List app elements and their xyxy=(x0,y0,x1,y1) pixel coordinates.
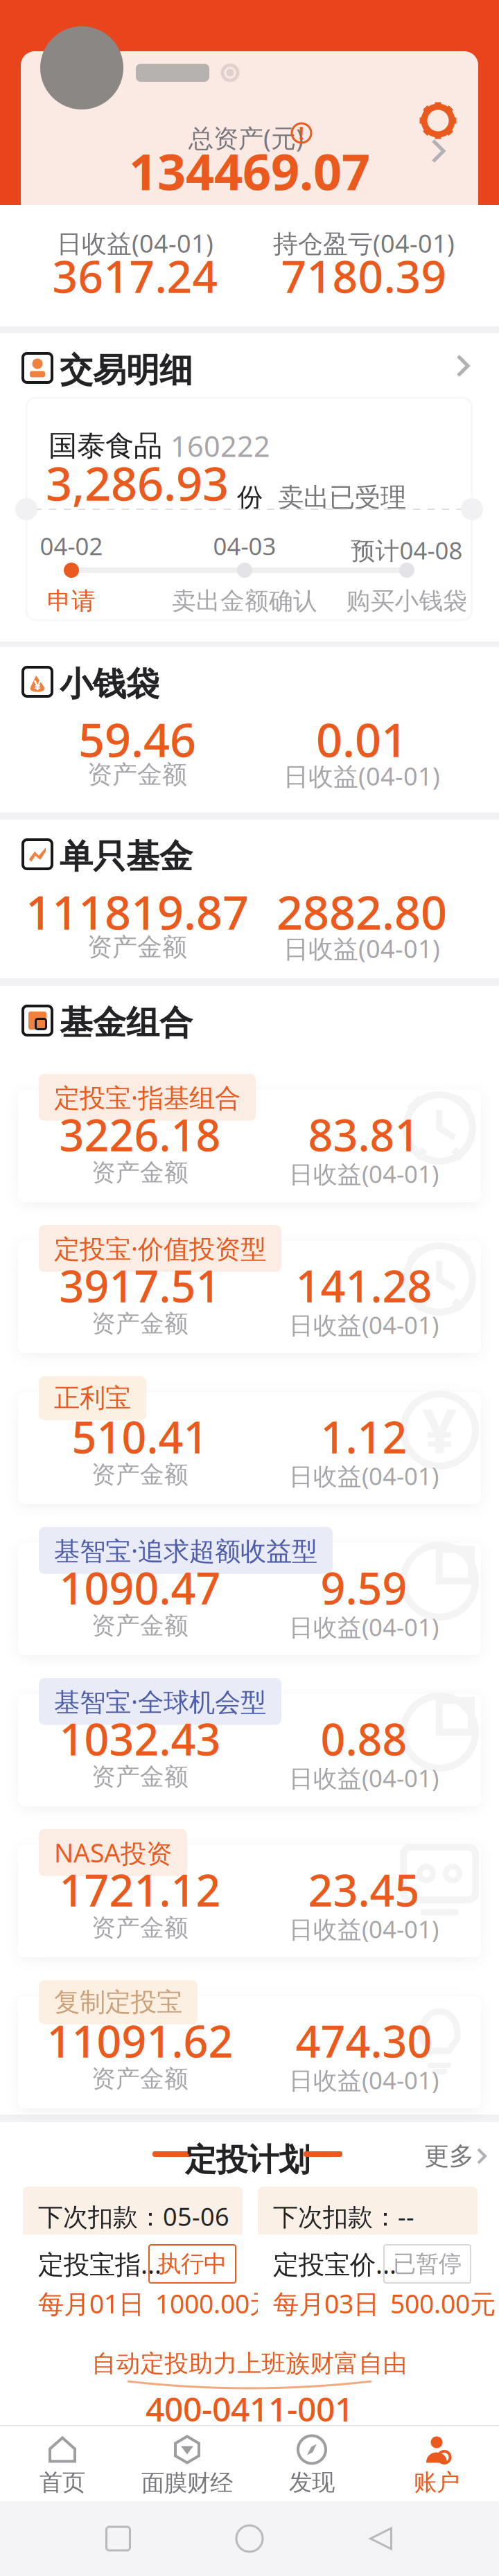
staticText: 日收益(04-01) xyxy=(289,1611,439,1643)
staticText: 份 xyxy=(237,482,263,513)
button[interactable]: 面膜财经 xyxy=(125,2425,249,2501)
staticText: 日收益(04-01) xyxy=(289,2064,439,2096)
button[interactable]: 更多 xyxy=(424,2122,495,2171)
button[interactable]: 国泰食品 xyxy=(26,398,472,620)
staticText: 交易明细 xyxy=(60,350,193,391)
staticText: 111819.87 xyxy=(26,881,249,942)
staticText: 1032.43 xyxy=(59,1710,221,1767)
staticText: 资产金额 xyxy=(91,1460,189,1489)
staticText: 购买小钱袋 xyxy=(346,586,467,616)
staticText: 日收益(04-01) xyxy=(283,759,440,792)
staticText: 执行中 xyxy=(158,2250,227,2278)
button[interactable]: 下次扣款：05-06 xyxy=(23,2187,243,2322)
staticText: 资产金额 xyxy=(91,1158,189,1187)
staticText: 1.12 xyxy=(321,1408,407,1465)
staticText: 下次扣款：-- xyxy=(273,2200,414,2233)
staticText: ! xyxy=(299,121,304,145)
staticText: 134469.07 xyxy=(129,138,370,204)
staticText: 0.88 xyxy=(321,1710,407,1767)
staticText: 474.30 xyxy=(296,2012,432,2070)
button[interactable]: 单只基金 xyxy=(0,820,499,879)
staticText: 定投宝·指基组合 xyxy=(54,1080,240,1115)
staticText: 单只基金 xyxy=(60,836,193,877)
staticText: 资产金额 xyxy=(87,932,187,962)
button[interactable]: 账户 xyxy=(374,2425,499,2501)
staticText: 卖出已受理 xyxy=(278,482,406,513)
staticText: 1090.47 xyxy=(59,1559,221,1616)
staticText: 7180.39 xyxy=(281,246,447,305)
staticText: 59.46 xyxy=(78,708,196,770)
staticText: 复制定投宝 xyxy=(54,1986,182,2018)
button[interactable]: 基智宝·全球机会型 xyxy=(0,1678,499,1829)
button[interactable]: 发现 xyxy=(249,2425,374,2501)
staticText: 2882.80 xyxy=(277,881,447,942)
staticText: 基智宝·追求超额收益型 xyxy=(54,1533,317,1568)
staticText: 日收益(04-01) xyxy=(289,1762,439,1794)
staticText: 日收益(04-01) xyxy=(289,1158,439,1190)
staticText: 定投宝·价值投资型 xyxy=(54,1231,266,1266)
staticText: 更多 xyxy=(424,2141,474,2171)
staticText: 160222 xyxy=(170,427,270,465)
staticText: 3617.24 xyxy=(52,246,218,305)
staticText: 基金组合 xyxy=(60,1003,193,1044)
staticText: 总资产(元) xyxy=(189,121,304,154)
button[interactable]: 首页 xyxy=(0,2425,125,2501)
staticText: 资产金额 xyxy=(91,1762,189,1791)
staticText: 国泰食品 xyxy=(49,428,162,464)
staticText: 23.45 xyxy=(308,1861,420,1918)
staticText: 日收益(04-01) xyxy=(283,932,440,965)
staticText: 预计04-08 xyxy=(351,534,463,566)
staticText: 面膜财经 xyxy=(141,2469,233,2497)
staticText: 400-0411-001 xyxy=(146,2387,353,2431)
staticText: 定投宝价... xyxy=(273,2247,396,2281)
staticText: 日收益(04-01) xyxy=(57,226,213,260)
staticText: 9.59 xyxy=(321,1559,407,1616)
button[interactable]: 定投宝·指基组合 xyxy=(0,1074,499,1225)
staticText: 申请 xyxy=(47,586,96,616)
staticText: 已暂停 xyxy=(393,2250,462,2278)
button[interactable]: ¥ xyxy=(0,647,499,707)
staticText: 11091.62 xyxy=(47,2012,233,2070)
staticText: 资产金额 xyxy=(87,759,187,790)
staticText: 资产金额 xyxy=(91,1913,189,1943)
button[interactable]: 交易明细 xyxy=(0,333,499,393)
staticText: 基智宝·全球机会型 xyxy=(54,1684,266,1719)
staticText: 资产金额 xyxy=(91,1309,189,1338)
staticText: 1721.12 xyxy=(59,1861,221,1918)
staticText: 每月03日 xyxy=(273,2286,379,2321)
staticText: 83.81 xyxy=(308,1106,420,1163)
staticText: 每月01日 xyxy=(38,2286,144,2321)
staticText: 04-02 xyxy=(40,530,103,562)
button[interactable]: ¥ xyxy=(0,1376,499,1527)
staticText: 定投计划 xyxy=(185,2141,310,2179)
button[interactable]: 基智宝·追求超额收益型 xyxy=(0,1527,499,1678)
staticText: 定投宝指... xyxy=(38,2247,161,2281)
staticText: ¥ xyxy=(34,676,41,694)
staticText: 日收益(04-01) xyxy=(289,1309,439,1341)
staticText: 3917.51 xyxy=(59,1257,221,1314)
staticText: 发现 xyxy=(289,2468,335,2497)
staticText: ¥ xyxy=(422,1390,457,1471)
staticText: NASA投资 xyxy=(54,1835,172,1870)
button[interactable]: NASA投资 xyxy=(0,1829,499,1980)
button[interactable]: 下次扣款：-- xyxy=(258,2187,478,2322)
staticText: 下次扣款：05-06 xyxy=(38,2200,229,2233)
staticText: 自动定投助力上班族财富自由 xyxy=(92,2349,407,2378)
button[interactable]: Settings xyxy=(419,101,457,140)
staticText: 账户 xyxy=(414,2468,459,2497)
staticText: 1000.00元 xyxy=(155,2286,275,2321)
staticText: 3,286.93 xyxy=(46,452,229,513)
button[interactable]: 定投宝·价值投资型 xyxy=(0,1225,499,1376)
staticText: 141.28 xyxy=(296,1257,432,1314)
staticText: 小钱袋 xyxy=(60,664,159,705)
button[interactable]: 复制定投宝 xyxy=(0,1980,499,2131)
staticText: 3226.18 xyxy=(59,1106,221,1163)
staticText: 日收益(04-01) xyxy=(289,1460,439,1492)
staticText: 资产金额 xyxy=(91,2064,189,2094)
button[interactable]: 基金组合 xyxy=(0,986,499,1046)
staticText: 510.41 xyxy=(72,1408,208,1465)
staticText: 持仓盈亏(04-01) xyxy=(273,226,455,260)
staticText: 0.01 xyxy=(316,708,408,770)
staticText: 04-03 xyxy=(213,530,276,562)
staticText: 首页 xyxy=(40,2468,85,2497)
